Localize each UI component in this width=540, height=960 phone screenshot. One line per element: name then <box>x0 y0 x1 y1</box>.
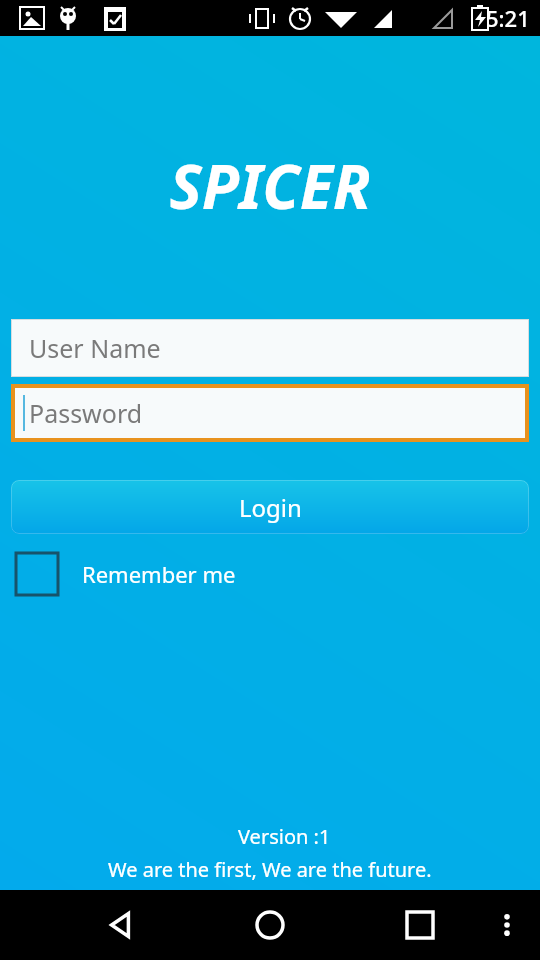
button[interactable]: Remember me <box>16 553 236 595</box>
staticText: SPICER <box>0 144 540 227</box>
staticText: 5:21 <box>486 3 530 33</box>
button[interactable]: Login <box>11 480 529 534</box>
staticText: Login <box>239 491 302 524</box>
button[interactable]: More options <box>482 900 532 950</box>
button[interactable]: Home <box>240 895 300 955</box>
button[interactable]: User Name <box>11 319 529 377</box>
staticText: Password <box>29 396 143 430</box>
staticText: We are the first, We are the future. <box>108 856 432 883</box>
staticText: Version :1 <box>238 823 331 850</box>
button[interactable]: Recent apps <box>390 895 450 955</box>
staticText: Remember me <box>82 559 236 589</box>
button[interactable]: Password <box>11 384 529 442</box>
button[interactable]: Back <box>90 895 150 955</box>
staticText: User Name <box>29 331 161 365</box>
